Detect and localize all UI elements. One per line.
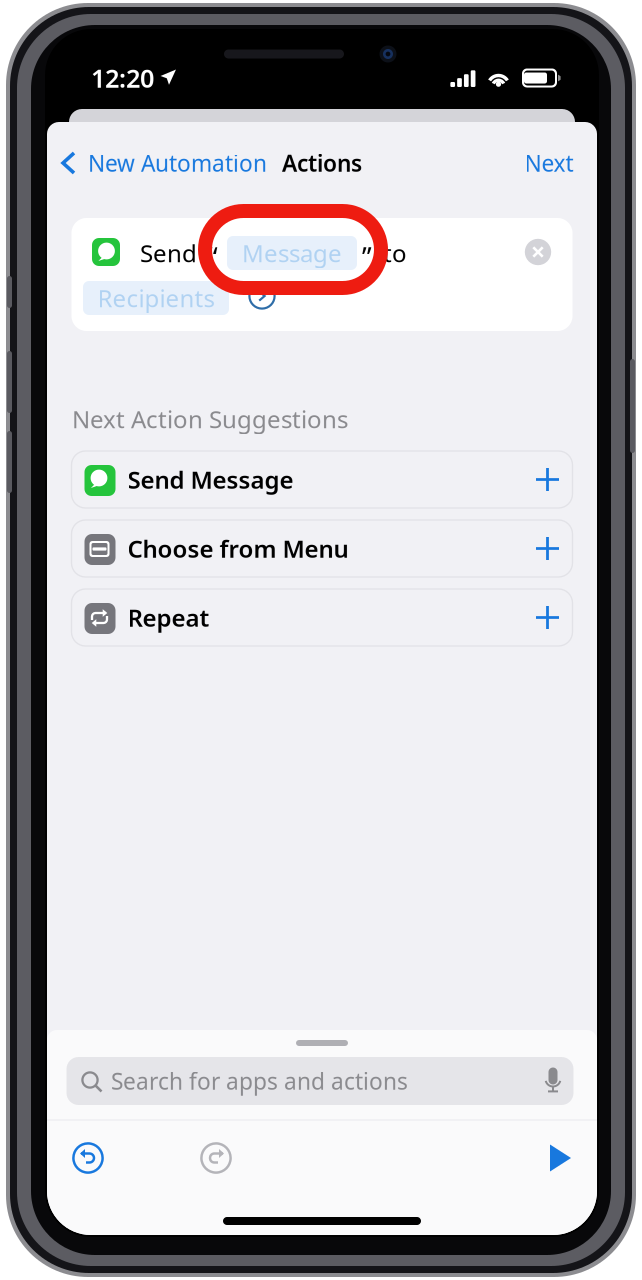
staticText: Send Message <box>127 464 293 495</box>
staticText: Next Action Suggestions <box>72 403 348 435</box>
button[interactable]: Undo <box>65 1135 111 1181</box>
button[interactable]: Run shortcut <box>536 1135 582 1181</box>
button[interactable]: Send Message <box>71 451 572 508</box>
staticText: 12:20 <box>91 61 154 95</box>
staticText: ” <box>362 239 372 275</box>
staticText: Recipients <box>97 282 214 314</box>
button[interactable]: Choose from Menu <box>71 520 572 577</box>
button[interactable]: New Automation <box>54 132 284 194</box>
button[interactable]: Repeat <box>71 589 572 646</box>
staticText: Next <box>524 148 573 178</box>
staticText: Repeat <box>127 602 209 633</box>
staticText: to <box>383 237 407 269</box>
staticText: Send <box>140 237 197 269</box>
staticText: Actions <box>282 148 362 178</box>
button[interactable]: Next <box>507 135 591 191</box>
staticText: “ <box>208 239 218 275</box>
staticText: Choose from Menu <box>127 533 348 564</box>
button[interactable]: Remove action <box>516 230 560 274</box>
staticText: Search for apps and actions <box>111 1066 408 1096</box>
staticText: New Automation <box>88 148 267 178</box>
staticText: Message <box>242 237 342 269</box>
button[interactable]: Redo <box>193 1135 239 1181</box>
